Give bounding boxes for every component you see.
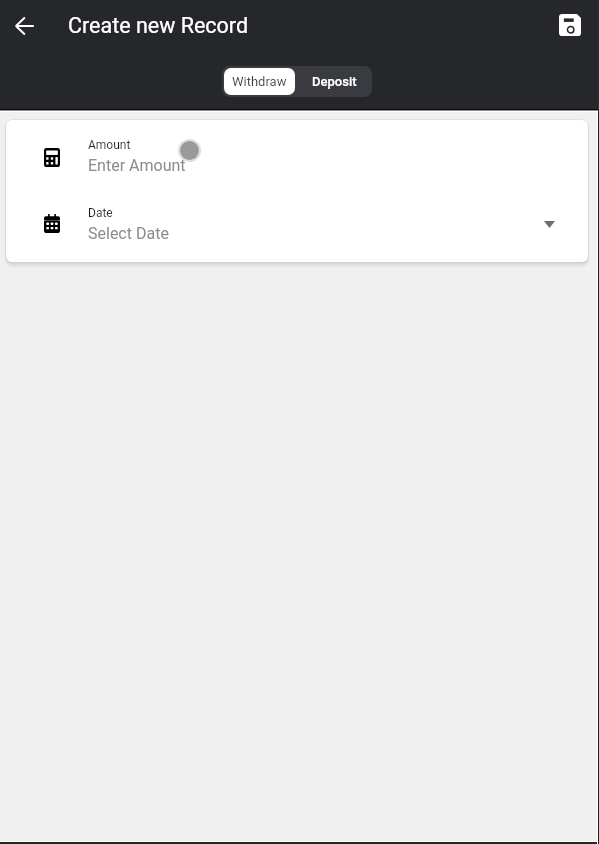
staticText: Date <box>88 206 113 220</box>
button[interactable]: Deposit <box>297 66 372 97</box>
staticText: Withdraw <box>232 74 287 89</box>
staticText: Deposit <box>312 74 357 89</box>
button[interactable]: Withdraw <box>224 68 295 95</box>
button[interactable]: Date <box>6 188 588 258</box>
staticText: Amount <box>88 138 131 152</box>
staticText: Enter Amount <box>88 156 186 175</box>
button[interactable]: Save <box>548 3 592 47</box>
staticText: Select Date <box>88 224 169 243</box>
staticText: Create new Record <box>68 13 249 38</box>
button[interactable]: Amount <box>6 120 588 190</box>
button[interactable]: Back <box>2 4 46 48</box>
